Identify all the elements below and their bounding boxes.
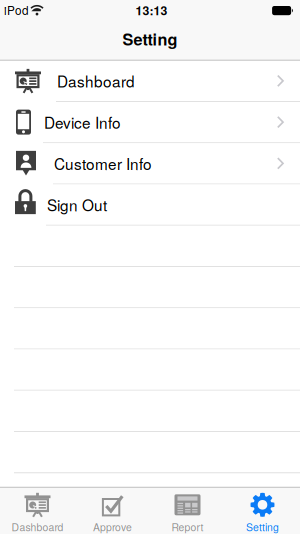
staticText: Dashboard <box>57 70 135 92</box>
button[interactable]: Dashboard <box>0 61 300 101</box>
staticText: Sign Out <box>47 194 107 216</box>
button[interactable]: Approve <box>75 488 150 534</box>
staticText: Setting <box>122 27 177 50</box>
staticText: Device Info <box>44 111 121 133</box>
staticText: Dashboard <box>11 519 63 534</box>
button[interactable]: Report <box>150 488 225 534</box>
staticText: Customer Info <box>54 152 152 174</box>
button[interactable]: Dashboard <box>0 488 75 534</box>
staticText: iPod <box>4 1 29 18</box>
staticText: Approve <box>93 519 132 534</box>
staticText: Report <box>171 519 203 534</box>
button[interactable]: Setting <box>225 488 300 534</box>
staticText: Setting <box>246 519 279 534</box>
button[interactable]: Sign Out <box>0 184 300 225</box>
staticText: 13:13 <box>135 1 167 19</box>
button[interactable]: Customer Info <box>0 143 300 183</box>
button[interactable]: Device Info <box>0 102 300 142</box>
